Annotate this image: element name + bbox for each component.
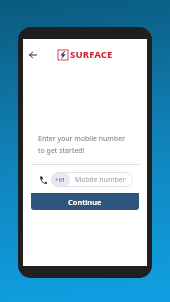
staticText: SURFACE [70,48,113,61]
button[interactable]: Back [25,47,40,62]
button[interactable]: +91 [51,172,133,187]
staticText: Mobile number [75,175,126,185]
button[interactable]: Continue [31,193,139,210]
staticText: Continue [68,197,102,207]
staticText: Enter your mobile number to get started! [38,134,131,155]
staticText: +91 [55,176,66,184]
button[interactable]: SURFACE [58,48,113,61]
button[interactable]: +91 [51,172,70,187]
